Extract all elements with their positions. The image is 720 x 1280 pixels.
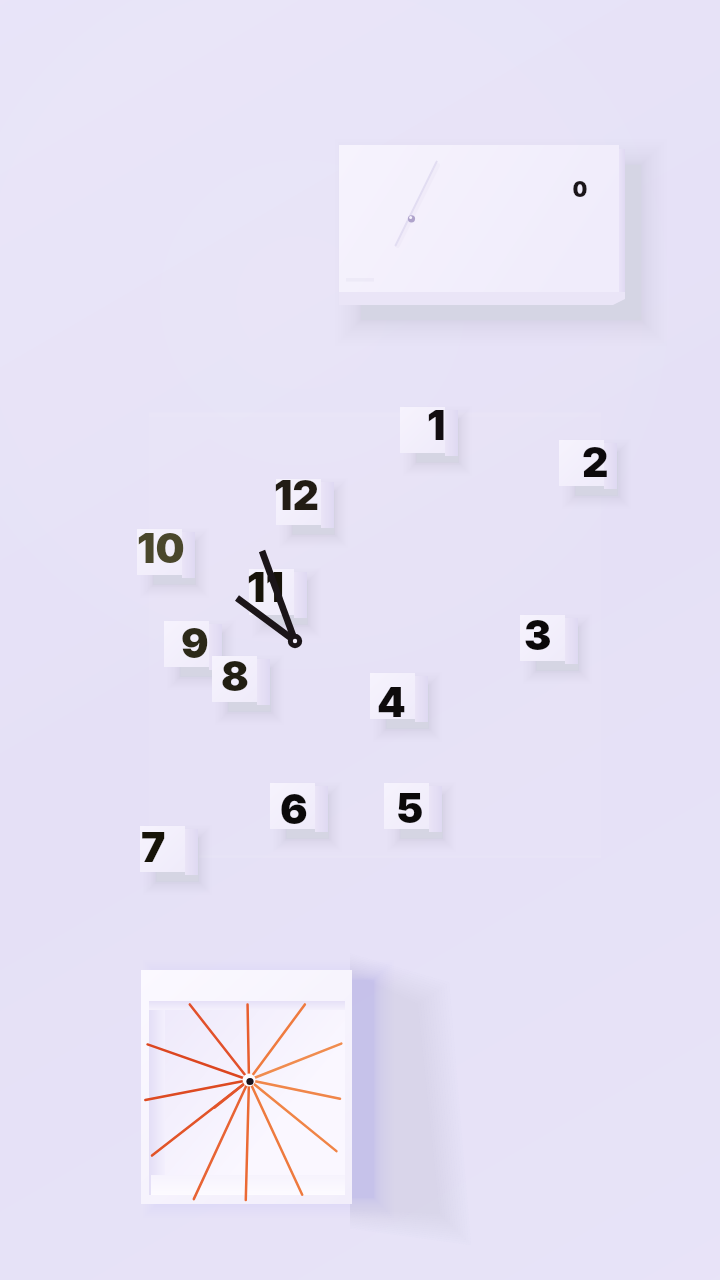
button[interactable]: Rectangular wall clock	[338, 145, 628, 305]
button[interactable]: Scattered number block clock	[137, 405, 622, 860]
button[interactable]: Orange sunburst shadow box	[141, 970, 356, 1205]
